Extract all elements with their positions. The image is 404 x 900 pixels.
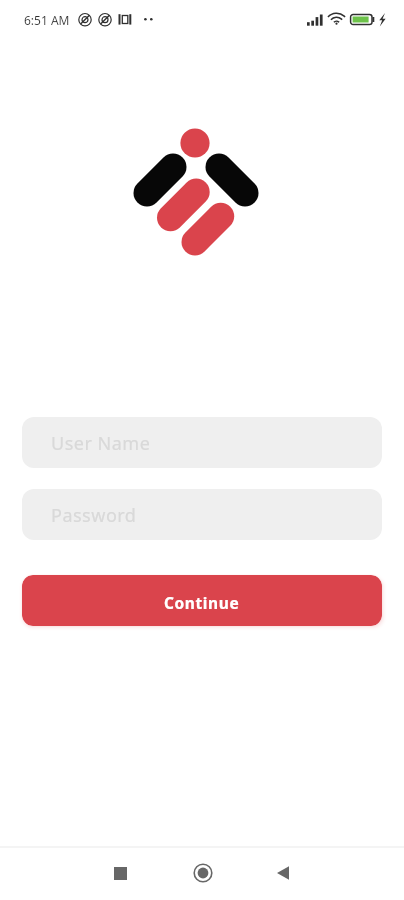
staticText: Continue	[164, 592, 240, 613]
button[interactable]: Password	[22, 489, 382, 540]
button[interactable]: Recent apps	[96, 849, 144, 897]
button[interactable]: Home	[179, 849, 227, 897]
staticText: 6:51 AM	[24, 12, 70, 28]
staticText: User Name	[51, 431, 151, 456]
button[interactable]: User Name	[22, 417, 382, 468]
button[interactable]: Back	[259, 849, 307, 897]
staticText: Password	[51, 503, 137, 528]
button[interactable]: Continue	[22, 575, 382, 626]
